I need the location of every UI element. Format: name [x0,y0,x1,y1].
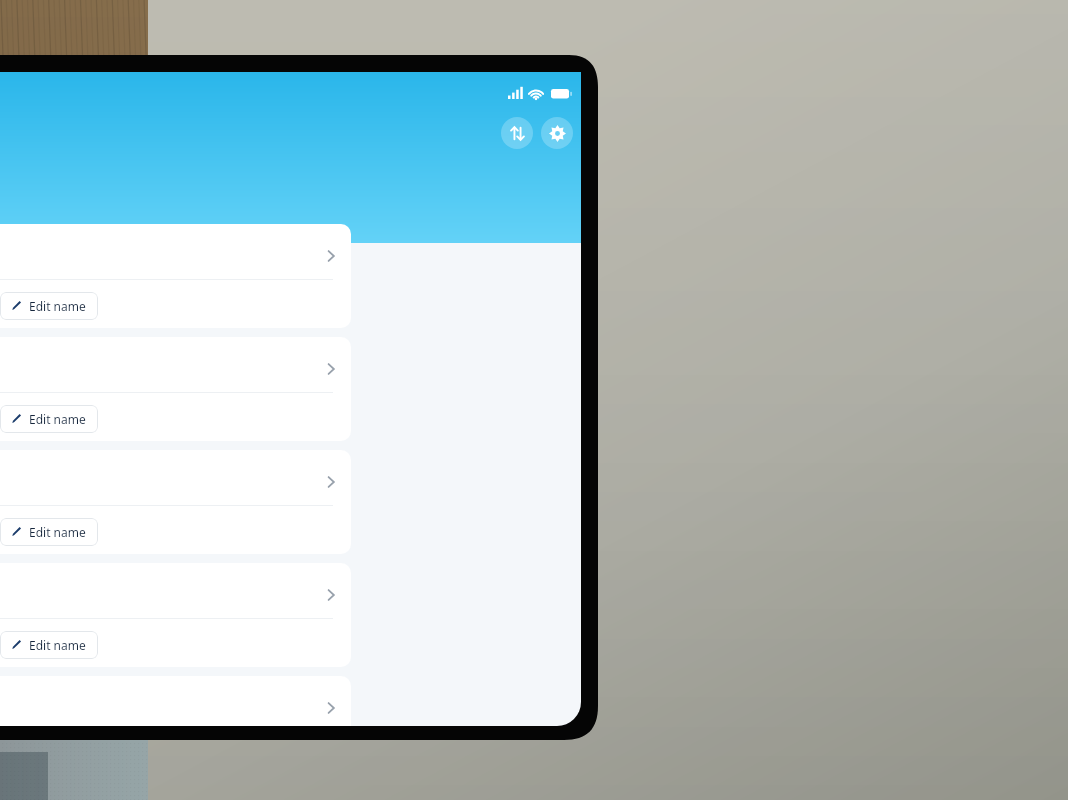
button[interactable]: Open device details [317,242,344,269]
staticText: Edit name [29,637,86,653]
staticText: Edit name [29,411,86,427]
button[interactable]: Open device details [0,563,351,667]
staticText: Edit name [29,524,86,540]
button[interactable]: Open device details [317,468,344,495]
button[interactable]: Open device details [0,337,351,441]
button[interactable]: Open device details [317,355,344,382]
button[interactable]: Edit name [0,518,98,546]
button[interactable]: Open device details [317,581,344,608]
button[interactable]: Sort devices [501,117,533,149]
button[interactable]: Edit name [0,292,98,320]
button[interactable]: Edit name [0,631,98,659]
button[interactable]: Open device details [317,694,344,721]
button[interactable]: Open device details [0,450,351,554]
staticText: Edit name [29,298,86,314]
button[interactable]: Edit name [0,405,98,433]
button[interactable]: Open device details [0,676,351,726]
button[interactable]: Settings [541,117,573,149]
button[interactable]: Open device details [0,224,351,328]
